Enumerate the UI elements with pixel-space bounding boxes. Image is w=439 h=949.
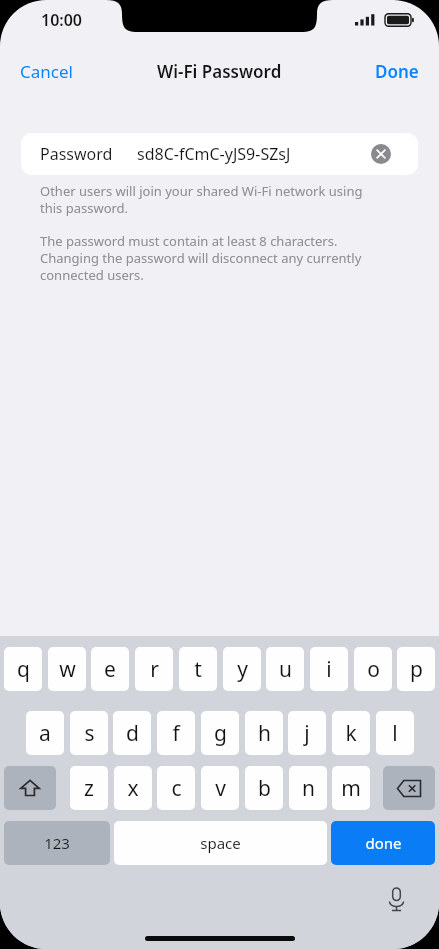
button[interactable]: f: [157, 711, 195, 755]
staticText: Cancel: [20, 60, 73, 83]
button[interactable]: r: [135, 647, 173, 691]
staticText: k: [345, 719, 357, 748]
button[interactable]: done: [331, 821, 435, 865]
staticText: q: [17, 655, 30, 684]
staticText: b: [258, 774, 271, 803]
staticText: p: [410, 655, 423, 684]
staticText: Done: [375, 60, 419, 83]
button[interactable]: h: [245, 711, 283, 755]
button[interactable]: Backspace: [383, 766, 435, 810]
button[interactable]: s: [70, 711, 108, 755]
staticText: x: [127, 774, 139, 803]
button[interactable]: a: [26, 711, 64, 755]
staticText: t: [194, 655, 202, 684]
staticText: Password: [40, 143, 113, 165]
button[interactable]: 123: [4, 821, 110, 865]
staticText: j: [304, 719, 310, 748]
button[interactable]: p: [397, 647, 435, 691]
staticText: The password must contain at least 8 cha…: [40, 232, 380, 284]
button[interactable]: Done: [365, 54, 429, 89]
staticText: 123: [44, 833, 70, 853]
staticText: u: [279, 655, 292, 684]
button[interactable]: j: [288, 711, 326, 755]
staticText: c: [171, 774, 182, 803]
staticText: y: [237, 655, 248, 684]
staticText: v: [215, 774, 226, 803]
staticText: d: [126, 719, 139, 748]
button[interactable]: Dictate: [376, 879, 416, 919]
button[interactable]: k: [332, 711, 370, 755]
staticText: i: [326, 655, 332, 684]
button[interactable]: q: [4, 647, 42, 691]
button[interactable]: g: [201, 711, 239, 755]
staticText: Wi-Fi Password: [157, 60, 282, 83]
staticText: m: [341, 774, 361, 803]
staticText: h: [258, 719, 271, 748]
staticText: o: [367, 655, 380, 684]
staticText: f: [172, 719, 180, 748]
button[interactable]: o: [354, 647, 392, 691]
staticText: z: [84, 774, 94, 803]
button[interactable]: v: [201, 766, 239, 810]
staticText: g: [214, 719, 227, 748]
staticText: 10:00: [41, 9, 83, 31]
button[interactable]: b: [245, 766, 283, 810]
button[interactable]: Password: [21, 133, 418, 175]
staticText: n: [302, 774, 315, 803]
button[interactable]: c: [157, 766, 195, 810]
button[interactable]: w: [48, 647, 86, 691]
button[interactable]: y: [223, 647, 261, 691]
button[interactable]: Cancel: [10, 54, 83, 89]
button[interactable]: x: [114, 766, 152, 810]
staticText: Other users will join your shared Wi-Fi …: [40, 182, 380, 217]
staticText: e: [104, 655, 116, 684]
button[interactable]: l: [376, 711, 414, 755]
staticText: space: [200, 833, 241, 853]
button[interactable]: i: [310, 647, 348, 691]
button[interactable]: n: [289, 766, 327, 810]
button[interactable]: e: [91, 647, 129, 691]
staticText: a: [39, 719, 51, 748]
button[interactable]: t: [179, 647, 217, 691]
button[interactable]: Shift: [4, 766, 56, 810]
button[interactable]: m: [332, 766, 370, 810]
staticText: done: [365, 833, 402, 853]
button[interactable]: space: [114, 821, 327, 865]
staticText: r: [150, 655, 159, 684]
staticText: s: [84, 719, 95, 748]
button[interactable]: Clear text: [369, 142, 393, 166]
button[interactable]: z: [70, 766, 108, 810]
button[interactable]: d: [113, 711, 151, 755]
button[interactable]: u: [266, 647, 304, 691]
staticText: l: [392, 719, 398, 748]
staticText: w: [59, 655, 76, 684]
staticText: sd8C-fCmC-yJS9-SZsJ: [137, 143, 291, 165]
